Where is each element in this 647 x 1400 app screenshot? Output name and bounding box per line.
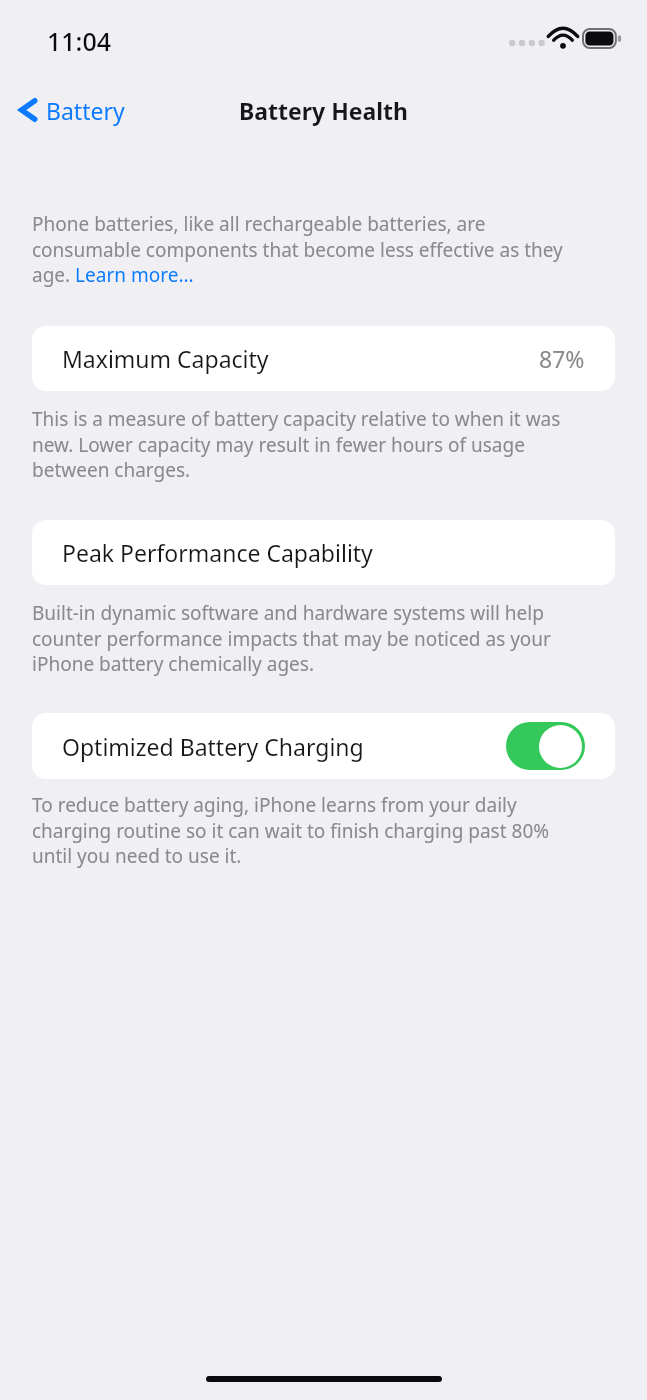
staticText: Optimized Battery Charging bbox=[62, 731, 364, 762]
button[interactable]: Maximum Capacity bbox=[32, 326, 615, 391]
staticText: Phone batteries, like all rechargeable b… bbox=[32, 211, 588, 287]
button[interactable]: Optimized Battery Charging bbox=[506, 722, 585, 770]
staticText: 87% bbox=[539, 343, 585, 374]
staticText: 11:04 bbox=[47, 24, 112, 58]
staticText: Peak Performance Capability bbox=[62, 537, 373, 568]
button[interactable]: Battery bbox=[12, 88, 131, 132]
staticText: Battery bbox=[46, 95, 125, 126]
button[interactable]: Optimized Battery Charging bbox=[32, 713, 615, 779]
staticText: Maximum Capacity bbox=[62, 343, 269, 374]
button[interactable]: Peak Performance Capability bbox=[32, 520, 615, 585]
staticText: Built-in dynamic software and hardware s… bbox=[32, 600, 602, 676]
staticText: Battery Health bbox=[239, 95, 409, 126]
staticText: To reduce battery aging, iPhone learns f… bbox=[32, 792, 588, 868]
staticText: This is a measure of battery capacity re… bbox=[32, 406, 588, 482]
